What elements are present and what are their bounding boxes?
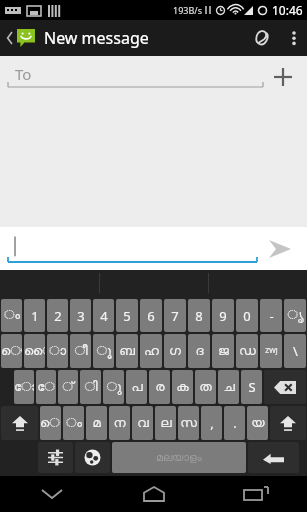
staticText: ബ bbox=[119, 345, 135, 358]
staticText: ു bbox=[106, 381, 122, 394]
button[interactable]: ി bbox=[80, 370, 101, 404]
staticText: . bbox=[233, 414, 237, 432]
button[interactable]: . bbox=[224, 406, 245, 440]
button[interactable]: ജ bbox=[212, 334, 234, 368]
staticText: ാ bbox=[49, 345, 66, 358]
button[interactable]: 9 bbox=[212, 299, 234, 332]
staticText: ൃ bbox=[287, 309, 304, 322]
button[interactable]: - bbox=[260, 299, 282, 332]
staticText: S bbox=[248, 378, 256, 396]
button[interactable]: 0 bbox=[236, 299, 258, 332]
button[interactable]: Shift bbox=[1, 406, 38, 440]
staticText: 7 bbox=[171, 307, 179, 325]
button[interactable]: ZWJ bbox=[260, 334, 282, 368]
button[interactable]: Enter bbox=[248, 442, 299, 473]
button[interactable]: Recent apps bbox=[205, 476, 307, 512]
button[interactable]: Change language bbox=[75, 442, 110, 473]
staticText: ം bbox=[66, 417, 82, 430]
button[interactable]: ാ bbox=[47, 334, 68, 368]
staticText: ല bbox=[160, 417, 172, 430]
button[interactable]: ക bbox=[172, 370, 193, 404]
button[interactable]: 3 bbox=[70, 299, 91, 332]
button[interactable]: ൊ bbox=[40, 406, 61, 440]
staticText: 1 bbox=[31, 307, 39, 325]
button[interactable]: , bbox=[201, 406, 222, 440]
button[interactable]: ഡ bbox=[236, 334, 258, 368]
button[interactable]: ഹ bbox=[140, 334, 162, 368]
button[interactable]: Send bbox=[257, 227, 303, 270]
button[interactable]: ു bbox=[103, 370, 124, 404]
button[interactable]: ൈ bbox=[24, 334, 45, 368]
button[interactable]: 5 bbox=[116, 299, 138, 332]
button[interactable]: ല bbox=[155, 406, 176, 440]
button[interactable]: To bbox=[8, 56, 263, 98]
button[interactable]: മ bbox=[86, 406, 107, 440]
staticText: ച bbox=[223, 381, 235, 394]
button[interactable]: ര bbox=[149, 370, 170, 404]
staticText: 4 bbox=[100, 307, 108, 325]
button[interactable]: ീ bbox=[70, 334, 91, 368]
button[interactable]: 4 bbox=[93, 299, 114, 332]
button[interactable]: 7 bbox=[164, 299, 186, 332]
staticText: 3 bbox=[77, 307, 85, 325]
button[interactable]: ് bbox=[58, 370, 78, 404]
staticText: ക bbox=[176, 381, 189, 394]
button[interactable]: പ bbox=[126, 370, 147, 404]
button[interactable]: 2 bbox=[47, 299, 68, 332]
staticText: ീ bbox=[74, 345, 88, 358]
button[interactable]: ദ bbox=[188, 334, 210, 368]
staticText: വ bbox=[137, 417, 149, 430]
staticText: ജ bbox=[218, 345, 229, 358]
button[interactable]: 1 bbox=[24, 299, 45, 332]
button[interactable]: Add recipient bbox=[263, 57, 303, 97]
staticText: മലയാളം bbox=[156, 452, 202, 463]
button[interactable]: ം bbox=[63, 406, 84, 440]
button[interactable]: ോ bbox=[14, 370, 34, 404]
staticText: ം bbox=[4, 309, 20, 322]
staticText: ോ bbox=[14, 381, 34, 394]
staticText: ൈ bbox=[24, 345, 45, 358]
staticText: ZWJ bbox=[265, 346, 278, 356]
staticText: 5 bbox=[123, 307, 131, 325]
button[interactable]: ച bbox=[218, 370, 239, 404]
button[interactable]: ത bbox=[195, 370, 216, 404]
staticText: 2 bbox=[54, 307, 62, 325]
button[interactable]: Shift bbox=[270, 406, 306, 440]
staticText: , bbox=[210, 414, 214, 432]
button[interactable]: Settings bbox=[38, 442, 73, 473]
button[interactable]: 6 bbox=[140, 299, 162, 332]
staticText: ഗ bbox=[169, 345, 181, 358]
button[interactable]: യ bbox=[247, 406, 268, 440]
button[interactable]: Back bbox=[0, 476, 103, 512]
staticText: 10:46 bbox=[272, 2, 303, 18]
button[interactable]: ൂ bbox=[93, 334, 114, 368]
button[interactable] bbox=[8, 227, 257, 270]
button[interactable]: \ bbox=[284, 334, 306, 368]
button[interactable]: 8 bbox=[188, 299, 210, 332]
button[interactable]: മലയാളം bbox=[112, 442, 246, 473]
button[interactable]: ൃ bbox=[284, 299, 306, 332]
button[interactable]: വ bbox=[132, 406, 153, 440]
button[interactable]: ബ bbox=[116, 334, 138, 368]
staticText: 193B/s bbox=[173, 4, 202, 16]
staticText: 0 bbox=[243, 307, 251, 325]
button[interactable]: സ bbox=[178, 406, 199, 440]
button[interactable]: S bbox=[241, 370, 262, 404]
staticText: \ bbox=[293, 342, 298, 360]
button[interactable]: േ bbox=[36, 370, 56, 404]
staticText: ൊ bbox=[40, 417, 61, 430]
button[interactable]: More options bbox=[281, 20, 307, 56]
button[interactable]: Delete bbox=[264, 370, 306, 404]
staticText: ി bbox=[84, 381, 98, 394]
button[interactable]: ന bbox=[109, 406, 130, 440]
button[interactable]: ം bbox=[1, 299, 22, 332]
button[interactable]: Home bbox=[103, 476, 205, 512]
button[interactable]: ൌ bbox=[1, 334, 22, 368]
button[interactable]: Navigate up bbox=[4, 28, 38, 48]
staticText: േ bbox=[37, 381, 55, 394]
button[interactable]: ഗ bbox=[164, 334, 186, 368]
button[interactable]: Attach bbox=[241, 20, 281, 56]
